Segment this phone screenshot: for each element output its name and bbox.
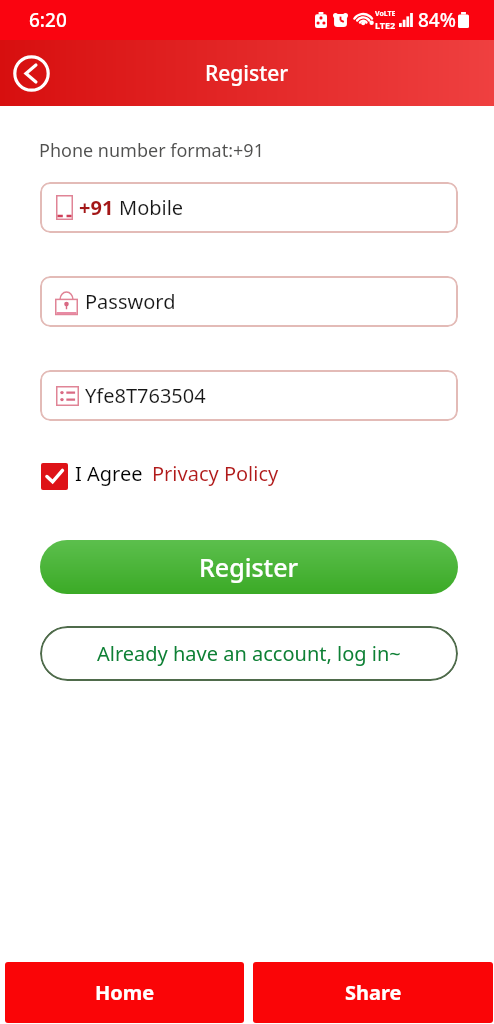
button[interactable]: [41, 463, 68, 490]
button[interactable]: Register: [40, 540, 458, 594]
staticText: 84%: [418, 7, 456, 33]
staticText: Phone number format:+91: [39, 138, 264, 163]
button[interactable]: Home: [5, 962, 244, 1023]
staticText: I Agree: [75, 460, 143, 487]
button[interactable]: Yfe8T763504: [40, 370, 458, 421]
staticText: +91: [79, 194, 114, 221]
staticText: 6:20: [29, 7, 67, 33]
staticText: Register: [205, 59, 289, 88]
staticText: VoLTE: [375, 9, 396, 19]
button[interactable]: +91: [40, 182, 458, 233]
button[interactable]: Privacy Policy: [152, 460, 279, 487]
staticText: Already have an account, log in~: [97, 640, 401, 667]
staticText: Register: [199, 550, 299, 584]
staticText: Home: [95, 979, 155, 1006]
button[interactable]: Share: [253, 962, 493, 1023]
staticText: Mobile: [119, 194, 184, 221]
staticText: LTE2: [375, 19, 396, 31]
staticText: Password: [85, 288, 176, 315]
staticText: Share: [345, 979, 402, 1006]
button[interactable]: Password: [40, 276, 458, 327]
button[interactable]: Back: [11, 53, 51, 93]
staticText: Yfe8T763504: [85, 382, 206, 409]
button[interactable]: Already have an account, log in~: [40, 626, 458, 681]
